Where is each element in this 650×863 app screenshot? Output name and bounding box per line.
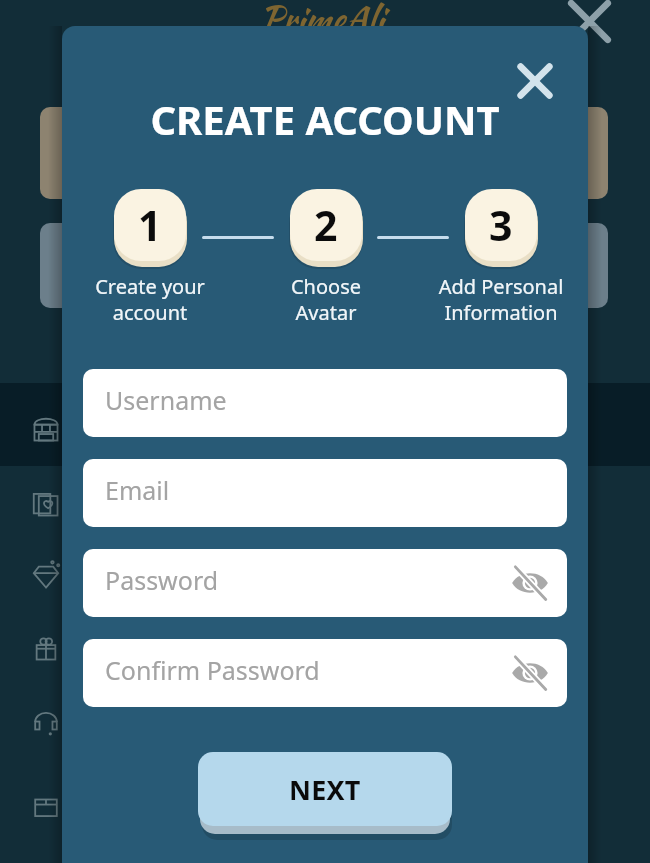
- button[interactable]: NEXT: [198, 752, 452, 826]
- button[interactable]: Menu item: [28, 558, 64, 594]
- button[interactable]: Toggle password visibility: [511, 654, 549, 692]
- staticText: Add Personal Information: [416, 273, 586, 325]
- staticText: Confirm Password: [105, 653, 320, 687]
- button[interactable]: Menu item: [28, 486, 64, 522]
- staticText: CREATE ACCOUNT: [62, 92, 588, 146]
- button[interactable]: 3: [465, 189, 537, 261]
- button[interactable]: Toggle password visibility: [511, 564, 549, 602]
- staticText: 2: [314, 197, 338, 253]
- staticText: Create your account: [65, 273, 235, 325]
- button[interactable]: Password: [83, 549, 567, 617]
- button[interactable]: 1: [114, 189, 186, 261]
- staticText: NEXT: [289, 771, 361, 808]
- staticText: Password: [105, 563, 219, 597]
- staticText: PrimeAli: [260, 0, 384, 45]
- button[interactable]: Confirm Password: [83, 639, 567, 707]
- button[interactable]: Close dialog: [511, 57, 559, 105]
- button[interactable]: Menu item: [28, 411, 64, 447]
- button[interactable]: Close screen: [566, 0, 613, 45]
- staticText: Username: [105, 383, 227, 417]
- button[interactable]: Email: [83, 459, 567, 527]
- button[interactable]: Menu item: [28, 788, 64, 824]
- button[interactable]: 2: [290, 189, 362, 261]
- staticText: 1: [138, 197, 162, 253]
- staticText: 3: [489, 197, 513, 253]
- button[interactable]: Menu item: [28, 630, 64, 666]
- staticText: Email: [105, 473, 170, 507]
- staticText: Choose Avatar: [241, 273, 411, 325]
- button[interactable]: Username: [83, 369, 567, 437]
- button[interactable]: Menu item: [28, 705, 64, 741]
